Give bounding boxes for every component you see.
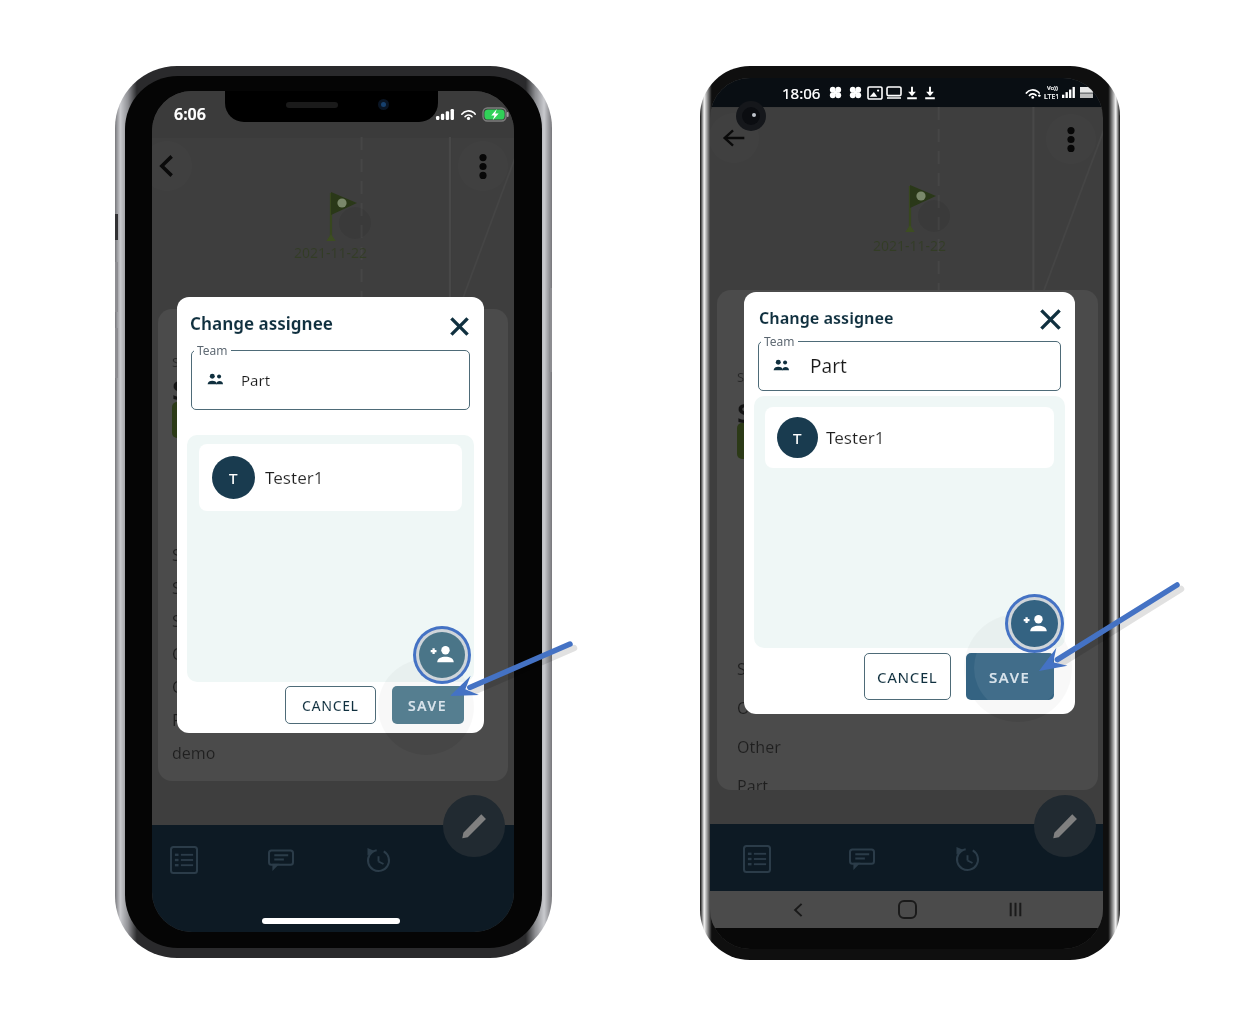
button[interactable]: History xyxy=(354,836,402,884)
button[interactable]: Tasks xyxy=(733,835,781,883)
button[interactable]: Close xyxy=(1034,303,1066,335)
button[interactable]: Messages xyxy=(257,836,305,884)
button[interactable]: Close xyxy=(443,310,475,342)
staticText: Part xyxy=(172,709,204,731)
staticText: Other xyxy=(737,736,781,758)
button[interactable]: Back xyxy=(152,141,192,191)
staticText: Vo)) xyxy=(1047,84,1058,92)
button[interactable]: SAVE xyxy=(392,686,464,724)
staticText: Team xyxy=(764,333,795,349)
button[interactable]: Edit xyxy=(1034,795,1096,857)
button[interactable]: CANCEL xyxy=(285,686,376,724)
button[interactable]: CANCEL xyxy=(864,653,951,700)
button[interactable]: Messages xyxy=(838,835,886,883)
staticText: Sa xyxy=(737,658,755,680)
button[interactable]: Add person xyxy=(419,632,465,678)
button[interactable]: Home xyxy=(887,891,927,928)
staticText: Ot xyxy=(172,676,191,698)
staticText: CANCEL xyxy=(302,696,359,715)
button[interactable]: More options xyxy=(458,141,508,191)
button[interactable]: History xyxy=(943,835,991,883)
staticText: 2021-11-22 xyxy=(873,236,947,255)
button[interactable]: Back xyxy=(710,113,759,163)
button[interactable]: More options xyxy=(1046,114,1096,164)
staticText: SAVE xyxy=(989,667,1031,687)
button[interactable]: Tasks xyxy=(160,836,208,884)
staticText: SD xyxy=(737,368,754,386)
staticText: 18:06 xyxy=(782,83,821,103)
staticText: Part xyxy=(810,353,847,379)
staticText: Tester1 xyxy=(826,426,885,449)
staticText: Tester1 xyxy=(265,466,324,489)
button[interactable]: Back xyxy=(778,891,818,928)
staticText: LTE1 xyxy=(1044,92,1060,102)
staticText: T xyxy=(793,428,802,448)
staticText: S xyxy=(172,371,187,408)
staticText: 6:06 xyxy=(174,103,206,125)
button[interactable]: Edit xyxy=(443,795,505,857)
button[interactable]: T xyxy=(765,407,1054,468)
staticText: SAVE xyxy=(408,696,448,715)
staticText: Part xyxy=(241,370,271,390)
staticText: Sa xyxy=(172,544,190,566)
staticText: SD xyxy=(172,353,189,371)
staticText: 2021-11-22 xyxy=(294,243,368,262)
staticText: Sa xyxy=(172,577,190,599)
staticText: Sa xyxy=(172,610,190,632)
button[interactable]: Recents xyxy=(995,891,1035,928)
staticText: demo xyxy=(172,742,216,764)
staticText: T xyxy=(229,468,238,488)
staticText: S xyxy=(737,394,752,431)
staticText: Change assignee xyxy=(759,307,894,329)
button[interactable]: Add person xyxy=(1011,600,1058,647)
staticText: Part xyxy=(737,775,769,790)
staticText: Team xyxy=(197,342,228,358)
staticText: Change assignee xyxy=(190,312,333,335)
staticText: CANCEL xyxy=(877,667,938,687)
button[interactable]: T xyxy=(199,444,462,511)
button[interactable]: SAVE xyxy=(966,653,1054,700)
staticText: Ot xyxy=(737,697,756,719)
staticText: Ot xyxy=(172,643,191,665)
